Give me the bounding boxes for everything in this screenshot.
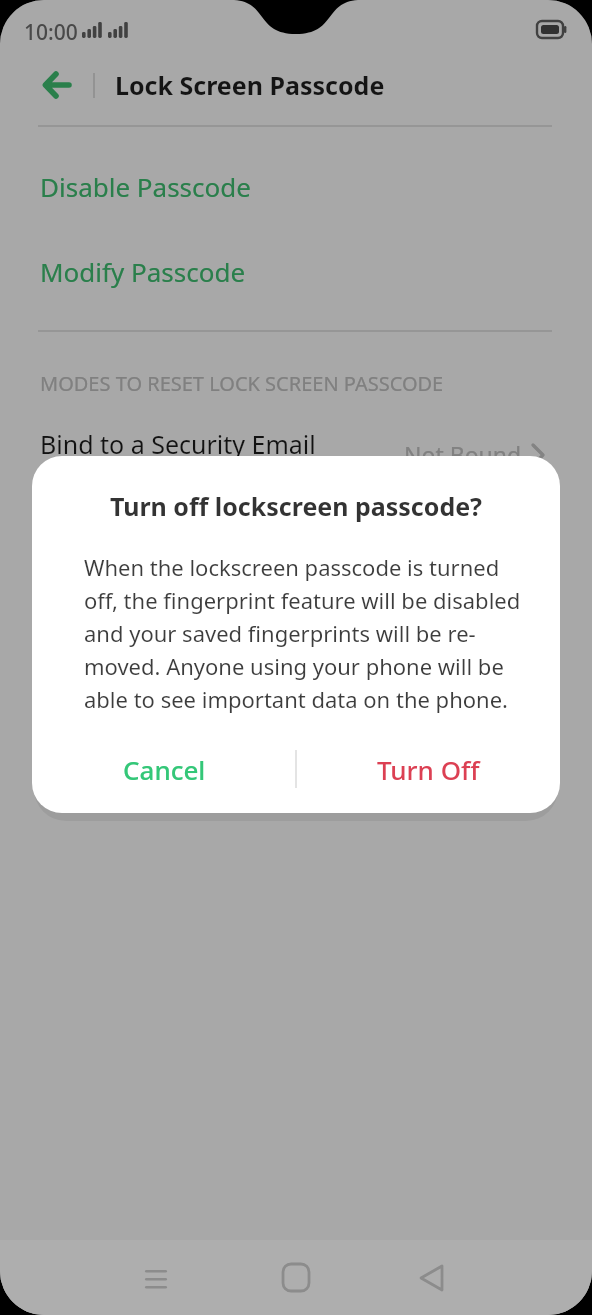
staticText: Cancel (123, 752, 206, 787)
staticText: Turn Off (377, 752, 480, 787)
button[interactable]: Cancel (32, 725, 296, 813)
button[interactable]: Bind to a Security Email (0, 408, 592, 482)
button[interactable] (417, 1260, 453, 1296)
staticText: MODES TO RESET LOCK SCREEN PASSCODE (40, 370, 444, 397)
staticText: Lock Screen Passcode (115, 68, 385, 102)
button[interactable]: Turn Off (296, 725, 560, 813)
button[interactable]: Disable Passcode (0, 140, 592, 232)
staticText: 10:00 (24, 18, 78, 47)
staticText: Modify Passcode (40, 254, 246, 289)
staticText: When the lockscreen passcode is turned o… (84, 552, 521, 714)
staticText: Turn off lockscreen passcode? (110, 489, 483, 523)
staticText: Disable Passcode (40, 169, 251, 204)
staticText: Bind to a Security Email (40, 427, 316, 461)
button[interactable] (278, 1260, 314, 1296)
button[interactable]: Modify Passcode (0, 232, 592, 320)
staticText: Not Bound (404, 439, 522, 470)
button[interactable] (138, 1260, 174, 1296)
button[interactable] (38, 66, 76, 104)
